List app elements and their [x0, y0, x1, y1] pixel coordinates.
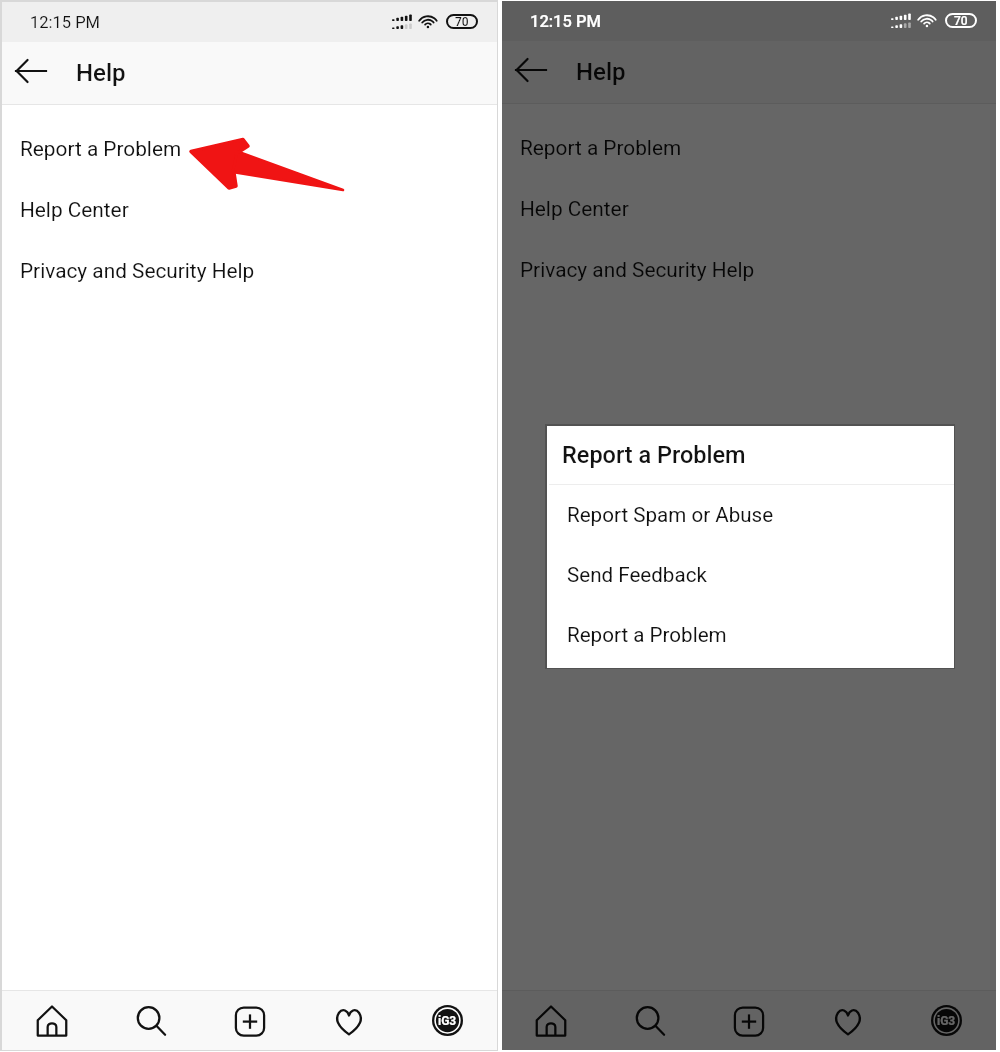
staticText: 12:15 PM — [530, 12, 601, 31]
staticText: Privacy and Security Help — [20, 259, 255, 283]
button[interactable]: Report a Problem — [502, 117, 996, 178]
button[interactable]: Send Feedback — [547, 545, 954, 605]
staticText: Send Feedback — [567, 563, 707, 587]
staticText: Help — [576, 58, 626, 86]
button[interactable]: Profile — [897, 991, 996, 1050]
button[interactable]: Activity — [299, 991, 398, 1050]
button[interactable]: Home — [2, 991, 101, 1050]
staticText: 12:15 PM — [30, 13, 100, 32]
staticText: Report a Problem — [520, 136, 682, 160]
staticText: Report a Problem — [20, 137, 182, 161]
button[interactable]: Profile — [398, 991, 497, 1050]
staticText: Help Center — [20, 198, 129, 222]
button[interactable]: Search — [600, 991, 699, 1050]
button[interactable]: Help Center — [2, 179, 497, 240]
staticText: Help — [76, 59, 126, 87]
button[interactable]: Activity — [798, 991, 897, 1050]
staticText: Report a Problem — [567, 623, 727, 647]
staticText: Privacy and Security Help — [520, 258, 755, 282]
button[interactable]: Privacy and Security Help — [502, 239, 996, 300]
button[interactable]: Home — [502, 991, 600, 1050]
button[interactable]: Create — [699, 991, 798, 1050]
staticText: iG3 — [438, 1014, 457, 1028]
button[interactable]: Back — [509, 48, 553, 92]
button[interactable]: Report a Problem — [547, 605, 954, 665]
button[interactable]: Privacy and Security Help — [2, 240, 497, 301]
staticText: 70 — [954, 14, 968, 28]
staticText: 70 — [455, 15, 469, 29]
staticText: Report a Problem — [562, 441, 746, 469]
button[interactable]: Create — [200, 991, 299, 1050]
button[interactable]: Report a Problem — [2, 118, 497, 179]
staticText: Help Center — [520, 197, 629, 221]
button[interactable]: Report Spam or Abuse — [547, 485, 954, 545]
staticText: Report Spam or Abuse — [567, 503, 774, 527]
button[interactable]: Help Center — [502, 178, 996, 239]
staticText: 70 — [954, 14, 968, 28]
staticText: iG3 — [937, 1014, 956, 1028]
button[interactable]: Back — [9, 49, 53, 93]
staticText: 12:15 PM — [530, 12, 600, 31]
button[interactable]: Search — [101, 991, 200, 1050]
